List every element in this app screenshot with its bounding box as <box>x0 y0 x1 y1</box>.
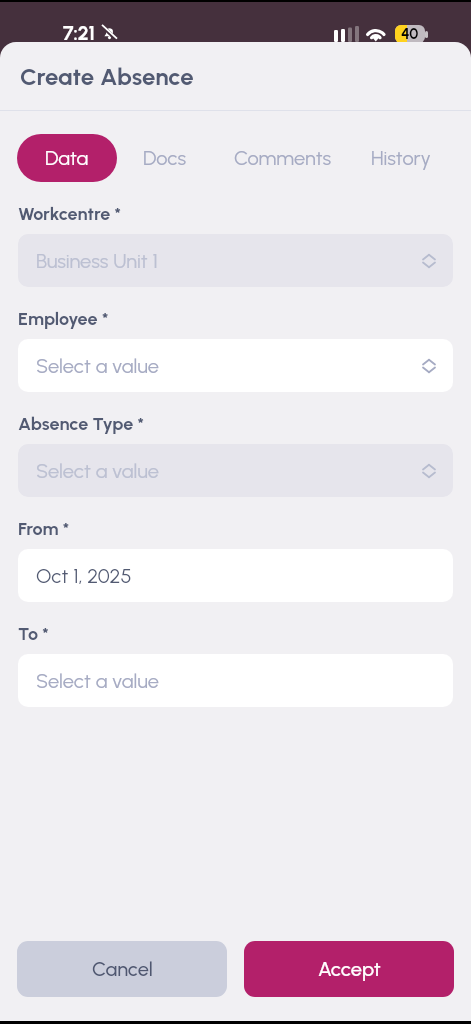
staticText: Employee * <box>18 308 109 330</box>
staticText: From * <box>18 518 70 540</box>
staticText: 40 <box>401 25 419 43</box>
staticText: Business Unit 1 <box>36 249 158 273</box>
staticText: Oct 1, 2025 <box>36 564 132 588</box>
staticText: Select a value <box>36 354 159 378</box>
staticText: History <box>371 146 431 170</box>
button[interactable]: History <box>352 134 451 182</box>
staticText: To * <box>18 623 49 645</box>
staticText: Data <box>45 146 89 170</box>
staticText: Docs <box>143 146 187 170</box>
button[interactable]: Data <box>17 134 117 182</box>
button[interactable]: Oct 1, 2025 <box>18 549 453 602</box>
staticText: Accept <box>318 957 381 981</box>
staticText: Cancel <box>92 957 153 981</box>
staticText: Workcentre * <box>18 203 122 225</box>
button[interactable]: Docs <box>117 134 210 182</box>
staticText: Create Absence <box>20 62 194 91</box>
button[interactable]: Select a value <box>18 339 453 392</box>
staticText: Select a value <box>36 459 159 483</box>
staticText: Comments <box>234 146 332 170</box>
button[interactable]: Accept <box>244 941 454 997</box>
button[interactable]: Comments <box>210 134 352 182</box>
staticText: 7:21 <box>63 22 95 45</box>
staticText: Select a value <box>36 669 159 693</box>
button[interactable]: Business Unit 1 <box>18 234 453 287</box>
button[interactable]: Select a value <box>18 444 453 497</box>
button[interactable]: Cancel <box>17 941 227 997</box>
staticText: Absence Type * <box>18 413 145 435</box>
button[interactable]: Select a value <box>18 654 453 707</box>
